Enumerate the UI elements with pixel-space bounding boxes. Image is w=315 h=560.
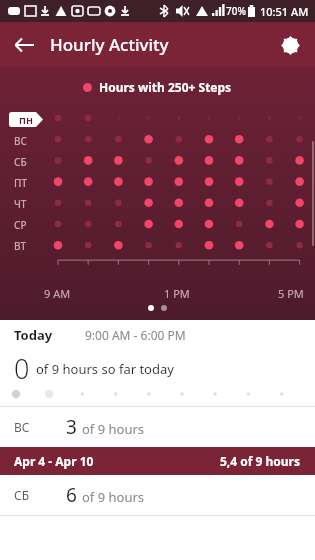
button[interactable]: Apr 4 - Apr 10 [0, 447, 315, 475]
button[interactable]: СБ [0, 475, 315, 515]
staticText: Today [14, 326, 53, 344]
staticText: СБ [14, 487, 66, 503]
staticText: 9:00 AM - 6:00 PM [85, 327, 186, 343]
staticText: 5,4 of 9 hours [220, 453, 301, 469]
staticText: Apr 4 - Apr 10 [14, 453, 94, 469]
staticText: Hourly Activity [50, 33, 169, 56]
staticText: ВТ [14, 239, 27, 253]
staticText: of 9 hours [82, 420, 145, 438]
staticText: of 9 hours [82, 488, 145, 506]
staticText: 10:51 AM [260, 4, 309, 19]
button[interactable]: ВС [0, 407, 315, 447]
staticText: 3 [66, 414, 77, 440]
staticText: ПТ [14, 176, 28, 190]
staticText: ЧТ [14, 197, 27, 211]
staticText: 5 PM [278, 286, 304, 301]
button[interactable]: Back [6, 27, 42, 63]
staticText: ПН [12, 114, 40, 126]
staticText: 6 [66, 482, 77, 508]
staticText: 70% [226, 4, 246, 18]
staticText: 1 PM [164, 286, 190, 301]
button[interactable]: Today [0, 320, 315, 350]
staticText: 0 [14, 350, 30, 382]
staticText: СР [14, 218, 27, 232]
staticText: 9 AM [44, 286, 71, 301]
staticText: СБ [14, 155, 27, 169]
staticText: of 9 hours so far today [36, 360, 174, 378]
staticText: Hours with 250+ Steps [99, 79, 232, 95]
staticText: ВС [14, 419, 66, 435]
button[interactable]: Settings [271, 26, 309, 64]
staticText: ВС [14, 134, 27, 148]
